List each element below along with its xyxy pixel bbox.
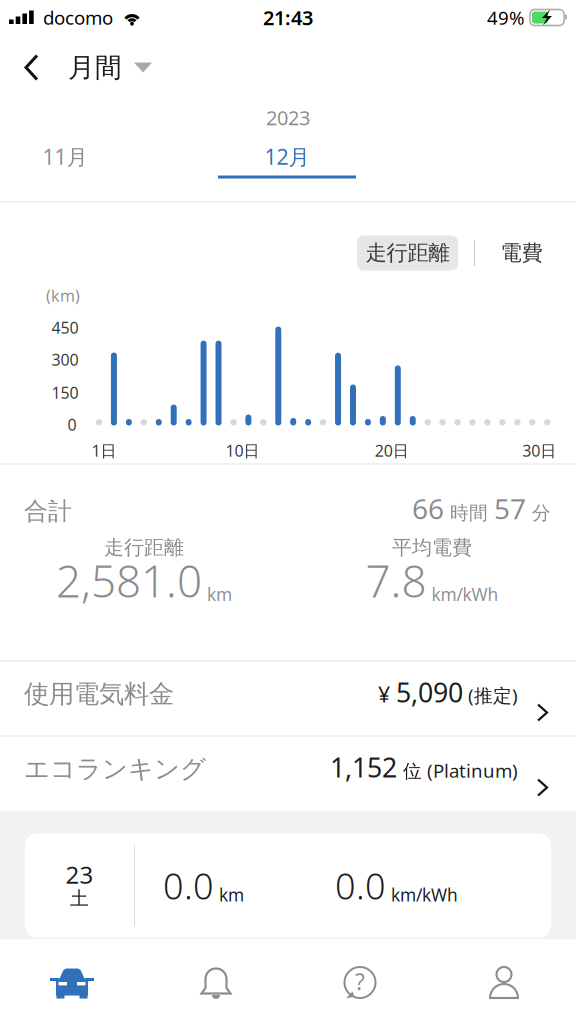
button[interactable]: 電費 [490,235,553,270]
staticText: 11月 [42,142,87,171]
button[interactable]: 使用電気料金 [0,661,576,735]
staticText: 49% [487,5,525,30]
staticText: km [202,583,232,606]
staticText: 5,090 [396,674,463,710]
button[interactable]: 月間 [58,39,162,95]
staticText: 0.0 [335,862,386,909]
staticText: 月間 [68,51,122,84]
staticText: 0.0 [163,862,214,909]
staticText: 分 [526,502,551,525]
staticText: 2,581.0 [56,551,202,610]
staticText: 平均電費 [392,535,472,560]
button[interactable]: 戻る [6,39,58,95]
staticText: 時間 [444,502,494,525]
staticText: 土 [70,887,89,910]
staticText: 電費 [500,240,542,266]
staticText: 0 [67,414,76,435]
staticText: (km) [46,285,80,306]
staticText: 合計 [24,497,72,526]
staticText: 23 [65,859,93,890]
staticText: km [214,883,244,906]
button[interactable]: 11月 [0,134,176,178]
staticText: 使用電気料金 [24,678,174,710]
staticText: 走行距離 [365,240,449,266]
staticText: 位 (Platinum) [397,758,518,783]
staticText: 57 [494,490,526,527]
staticText: ¥ [378,680,396,708]
staticText: 走行距離 [104,535,184,560]
staticText: ? [355,966,365,996]
button[interactable]: お知らせ [144,939,288,1024]
button[interactable]: アカウント [432,939,576,1024]
staticText: 66 [412,490,444,527]
staticText: 1日 [91,440,116,461]
staticText: 1,152 [330,749,397,785]
staticText: 10日 [225,440,259,461]
staticText: 7.8 [365,551,426,610]
button[interactable]: 走行距離 [357,235,458,270]
staticText: 300 [51,349,78,370]
button[interactable]: ヘルプ [288,939,432,1024]
staticText: (推定) [463,683,518,708]
staticText: 12月 [264,142,309,171]
staticText: km/kWh [386,883,458,906]
staticText: 450 [51,317,78,338]
button[interactable]: 12月 [176,134,398,178]
staticText: 21:43 [263,4,313,31]
staticText: エコランキング [24,753,206,785]
button[interactable]: 車両 [0,939,144,1024]
staticText: docomo [43,5,113,30]
staticText: 30日 [522,440,556,461]
staticText: 20日 [375,440,409,461]
staticText: 2023 [266,104,310,131]
staticText: 150 [51,382,78,403]
button[interactable]: エコランキング [0,736,576,810]
staticText: km/kWh [426,583,498,606]
